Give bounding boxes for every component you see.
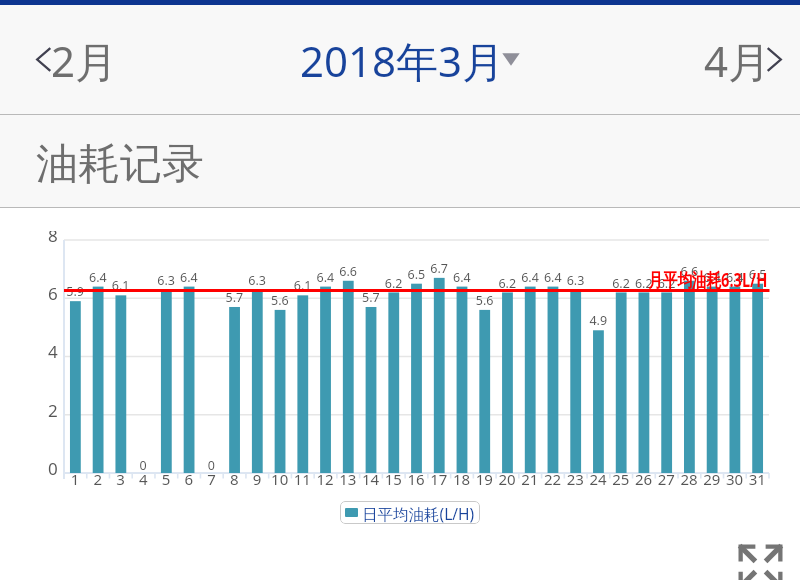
button[interactable]: Fullscreen [738,544,783,580]
button[interactable]: 2月 [0,21,132,98]
staticText: 2月 [51,32,118,89]
button[interactable]: 油耗记录 [0,115,800,207]
button[interactable]: 4月 [686,21,800,98]
button[interactable]: 2018年3月 [292,21,531,98]
button[interactable]: 日平均油耗(L/H) [340,501,480,524]
staticText: 2018年3月 [300,32,505,89]
staticText: 油耗记录 [36,138,204,191]
staticText: 日平均油耗(L/H) [362,503,475,524]
staticText: 4月 [704,32,771,89]
